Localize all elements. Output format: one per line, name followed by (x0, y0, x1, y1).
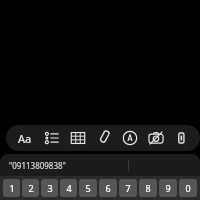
staticText: 4 (66, 182, 72, 194)
staticText: 8 (145, 182, 151, 194)
staticText: 3 (47, 182, 53, 194)
staticText: "09113809838" (9, 160, 66, 171)
button[interactable]: 0 (179, 179, 197, 197)
staticText: Aa (18, 131, 32, 146)
staticText: 1 (9, 182, 15, 194)
staticText: 2 (28, 182, 34, 194)
button[interactable]: 8 (139, 179, 157, 197)
button[interactable]: 1 (3, 179, 20, 197)
button[interactable]: More (173, 129, 191, 147)
button[interactable]: "09113809838" (0, 154, 128, 176)
button[interactable]: 5 (79, 179, 97, 197)
button[interactable]: 6 (99, 179, 117, 197)
button[interactable]: Attach file (95, 129, 113, 147)
button[interactable]: 3 (41, 179, 58, 197)
button[interactable]: 2 (22, 179, 39, 197)
button[interactable]: 9 (159, 179, 177, 197)
button[interactable]: Bulleted list (43, 129, 61, 147)
button[interactable]: Camera (147, 129, 165, 147)
button[interactable]: Aa (14, 127, 36, 149)
staticText: 0 (185, 182, 191, 194)
button[interactable]: 7 (119, 179, 137, 197)
staticText: 7 (125, 182, 131, 194)
button[interactable]: 4 (60, 179, 77, 197)
staticText: 6 (105, 182, 111, 194)
staticText: 5 (85, 182, 91, 194)
button[interactable]: Insert table (69, 129, 87, 147)
button[interactable]: Markup (121, 129, 139, 147)
staticText: 9 (165, 182, 171, 194)
